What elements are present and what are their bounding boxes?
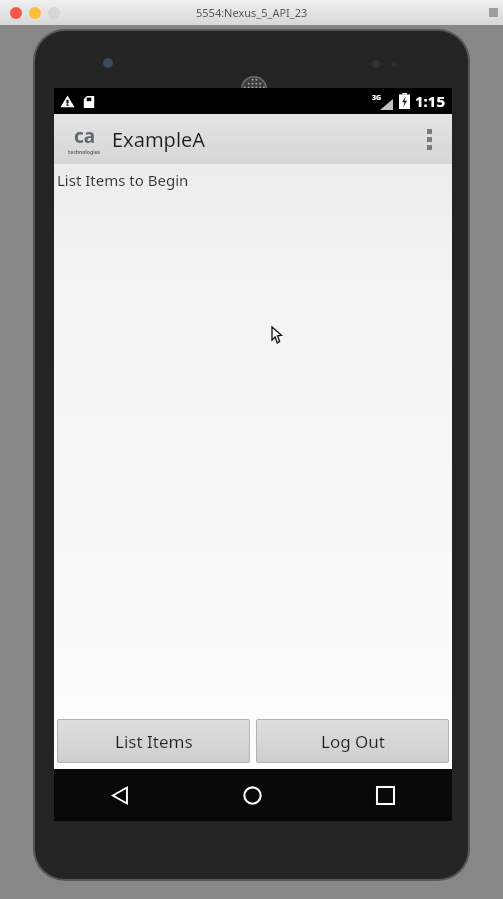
button[interactable]: Back (54, 769, 186, 821)
staticText: technologies (68, 149, 101, 156)
button[interactable]: List Items (57, 719, 250, 763)
button[interactable]: Home (186, 769, 319, 821)
staticText: 1:15 (415, 91, 445, 111)
button[interactable]: Recent apps (319, 769, 452, 821)
staticText: List Items to Begin (57, 170, 189, 190)
staticText: ca (74, 123, 96, 149)
button[interactable]: More options (406, 114, 452, 164)
staticText: List Items (115, 730, 193, 753)
button[interactable]: Log Out (256, 719, 449, 763)
staticText: 3G (372, 93, 382, 103)
staticText: Log Out (321, 730, 385, 753)
staticText: 5554:Nexus_5_API_23 (196, 5, 308, 20)
staticText: ExampleA (112, 126, 206, 153)
